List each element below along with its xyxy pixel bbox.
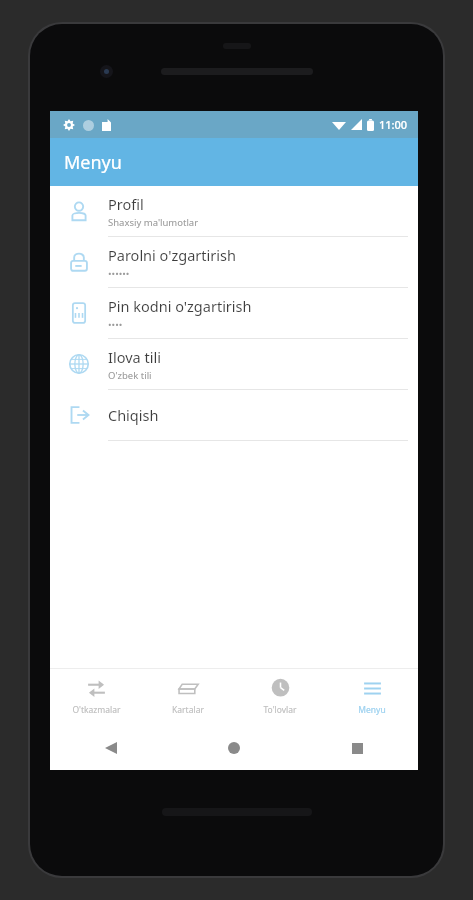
button[interactable]: Back xyxy=(94,731,128,765)
staticText: Kartalar xyxy=(172,704,204,716)
staticText: Menyu xyxy=(64,150,122,175)
button[interactable]: Chiqish xyxy=(50,390,418,440)
staticText: To'lovlar xyxy=(263,704,297,716)
button[interactable]: Menyu xyxy=(326,669,418,725)
staticText: Ilova tili xyxy=(108,347,161,367)
staticText: Shaxsiy ma'lumotlar xyxy=(108,216,199,229)
button[interactable]: Ilova tili xyxy=(50,339,418,389)
button[interactable]: Kartalar xyxy=(142,669,234,725)
staticText: Pin kodni o'zgartirish xyxy=(108,296,252,316)
staticText: O'tkazmalar xyxy=(72,704,121,716)
staticText: 11:00 xyxy=(379,117,408,132)
staticText: Parolni o'zgartirish xyxy=(108,245,236,265)
button[interactable]: Recent apps xyxy=(340,731,374,765)
button[interactable]: To'lovlar xyxy=(234,669,326,725)
button[interactable]: Parolni o'zgartirish xyxy=(50,237,418,287)
button[interactable]: Profil xyxy=(50,186,418,236)
button[interactable]: O'tkazmalar xyxy=(50,669,142,725)
staticText: O'zbek tili xyxy=(108,369,152,382)
button[interactable]: Pin kodni o'zgartirish xyxy=(50,288,418,338)
staticText: Menyu xyxy=(358,704,386,716)
staticText: •••• xyxy=(108,318,123,331)
staticText: Chiqish xyxy=(108,405,159,425)
staticText: •••••• xyxy=(108,267,130,280)
staticText: Profil xyxy=(108,194,144,214)
button[interactable]: Home xyxy=(217,731,251,765)
